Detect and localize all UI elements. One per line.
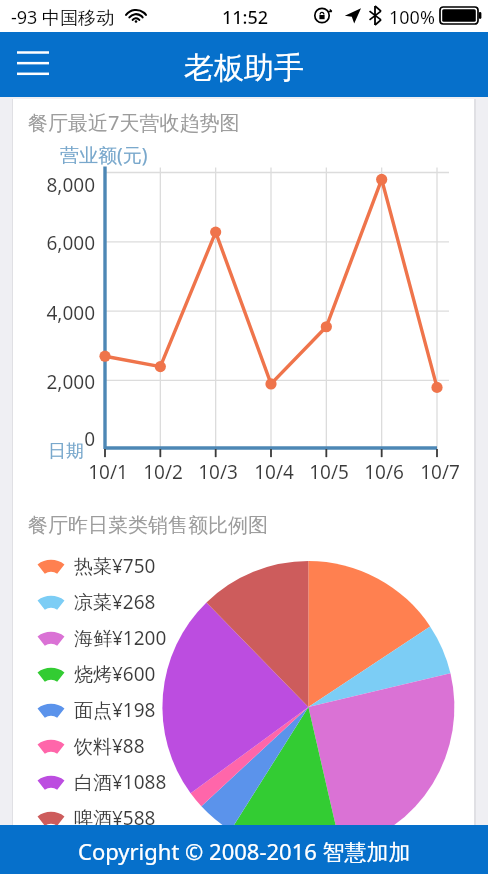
staticText: 10/1 (78, 459, 138, 485)
staticText: 饮料¥88 (74, 733, 145, 759)
staticText: 10/4 (244, 459, 304, 485)
button[interactable]: 凉菜¥268 (37, 584, 187, 620)
staticText: 餐厅昨日菜类销售额比例图 (28, 513, 268, 538)
staticText: 10/3 (188, 459, 248, 485)
button[interactable]: 面点¥198 (37, 692, 187, 728)
staticText: Copyright © 2008-2016 智慧加加 (78, 836, 411, 866)
staticText: 凉菜¥268 (74, 589, 156, 615)
staticText: 餐厅最近7天营收趋势图 (28, 109, 240, 136)
staticText: 2,000 (20, 369, 95, 395)
staticText: 面点¥198 (74, 697, 156, 723)
staticText: 白酒¥1088 (74, 769, 167, 795)
staticText: 4,000 (20, 300, 95, 326)
staticText: 10/7 (410, 459, 470, 485)
staticText: 10/5 (299, 459, 359, 485)
button[interactable]: 烧烤¥600 (37, 656, 187, 692)
staticText: 烧烤¥600 (74, 661, 156, 687)
staticText: 营业额(元) (60, 142, 148, 168)
staticText: 11:52 (222, 5, 269, 30)
button[interactable]: 白酒¥1088 (37, 764, 187, 800)
staticText: -93 中国移动 (11, 5, 115, 30)
staticText: 0 (20, 426, 95, 452)
button[interactable]: 饮料¥88 (37, 728, 187, 764)
staticText: 10/2 (133, 459, 193, 485)
staticText: 6,000 (20, 230, 95, 256)
staticText: 老板助手 (0, 49, 488, 87)
staticText: 100% (389, 5, 435, 30)
staticText: 啤酒¥588 (74, 805, 156, 831)
staticText: 热菜¥750 (74, 553, 156, 579)
staticText: 8,000 (20, 172, 95, 198)
button[interactable]: 啤酒¥588 (37, 800, 187, 836)
button[interactable]: 热菜¥750 (37, 548, 187, 584)
button[interactable]: 海鲜¥1200 (37, 620, 187, 656)
staticText: 海鲜¥1200 (74, 625, 167, 651)
button[interactable]: Open navigation menu (5, 40, 61, 88)
staticText: 日期 (48, 440, 84, 463)
staticText: 10/6 (354, 459, 414, 485)
